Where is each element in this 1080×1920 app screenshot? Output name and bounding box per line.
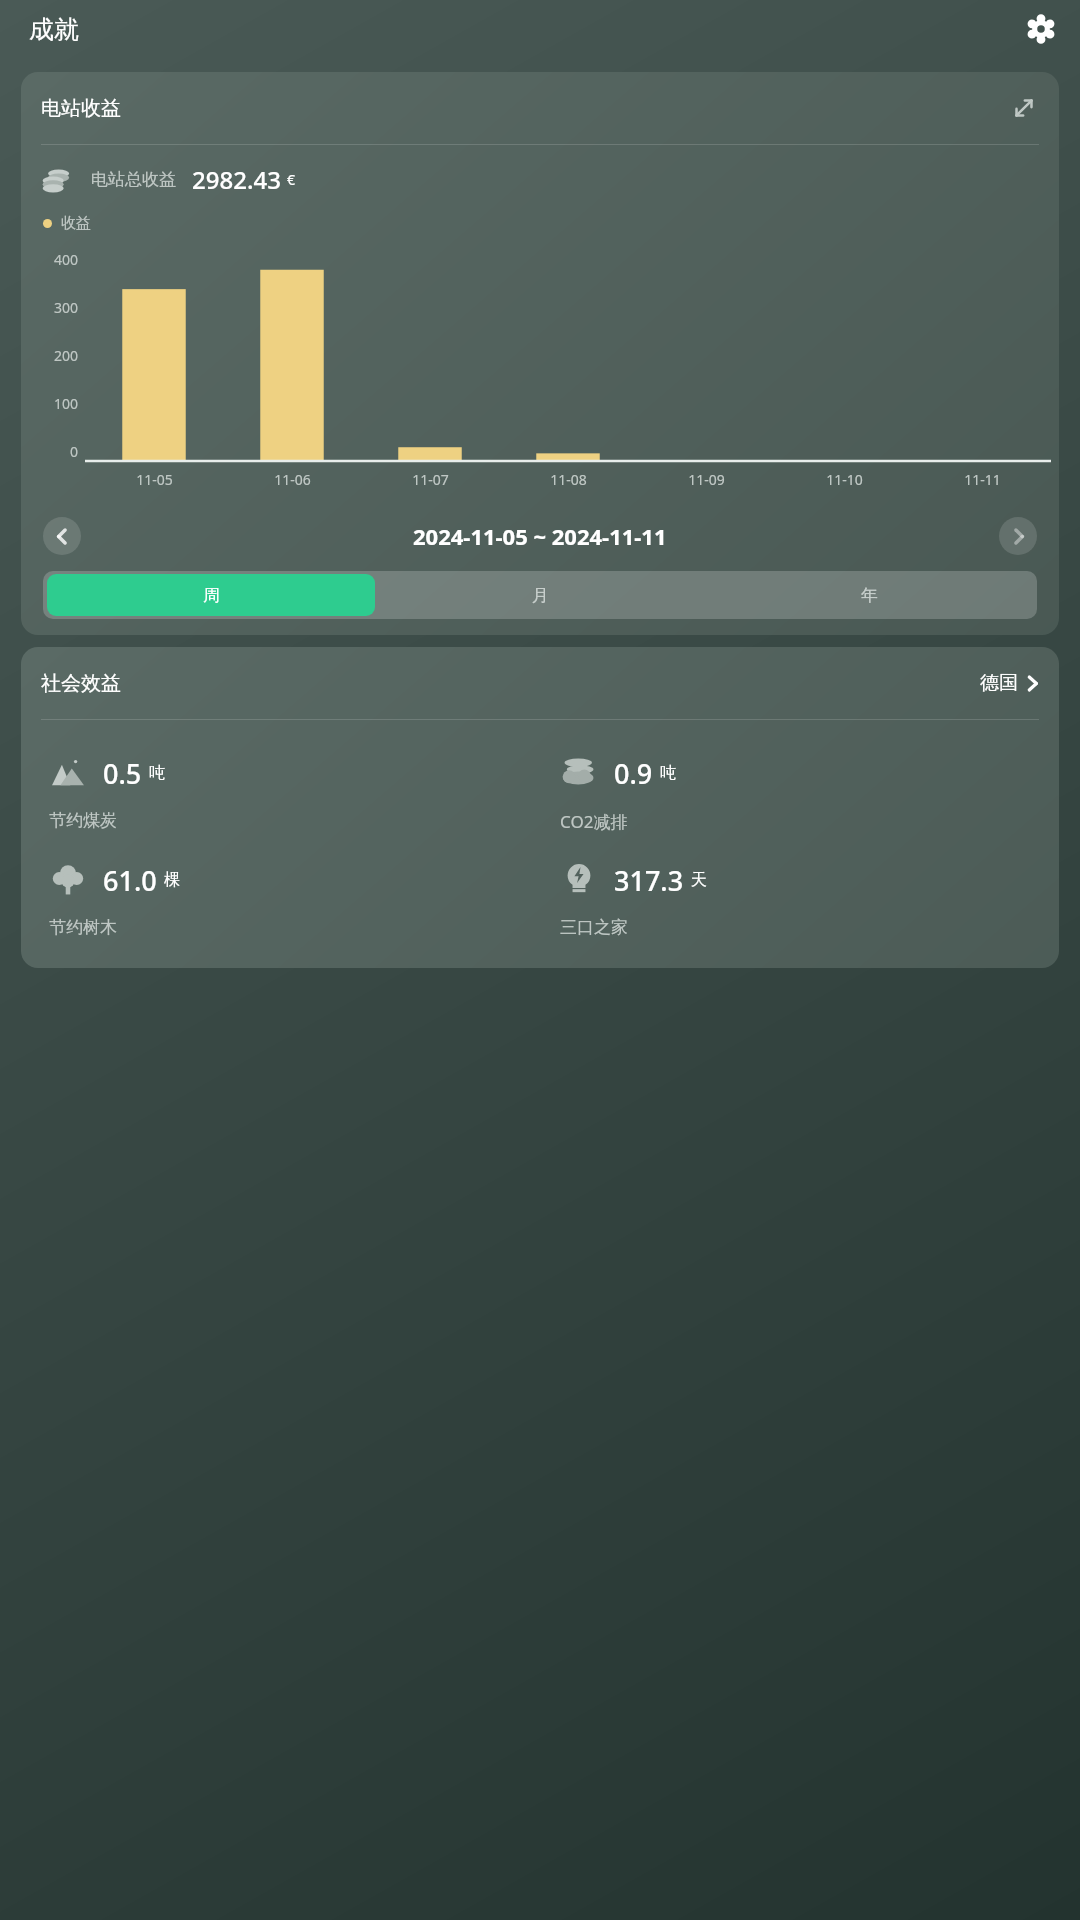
staticText: 11-09	[688, 470, 725, 489]
button[interactable]: Expand	[1009, 93, 1039, 123]
staticText: 0.5	[103, 755, 142, 792]
staticText: 电站总收益	[91, 169, 176, 190]
button[interactable]: 德国	[980, 671, 1039, 695]
staticText: 三口之家	[560, 917, 628, 938]
staticText: 0.9	[614, 755, 653, 792]
staticText: 年	[861, 585, 878, 606]
staticText: 收益	[61, 214, 91, 233]
staticText: 400	[54, 250, 79, 269]
staticText: 11-05	[136, 470, 173, 489]
staticText: 100	[54, 394, 79, 413]
staticText: 月	[532, 585, 549, 606]
staticText: 300	[54, 298, 79, 317]
staticText: 节约树木	[49, 917, 117, 938]
staticText: 棵	[164, 870, 180, 890]
staticText: 317.3	[614, 862, 684, 899]
staticText: 天	[691, 870, 707, 890]
staticText: 周	[203, 585, 220, 606]
staticText: 0	[70, 442, 79, 461]
staticText: 节约煤炭	[49, 810, 117, 831]
staticText: 吨	[149, 763, 165, 783]
staticText: 德国	[980, 671, 1018, 695]
button[interactable]: Next	[999, 517, 1037, 555]
button[interactable]: Settings	[1024, 12, 1058, 46]
staticText: 11-08	[550, 470, 587, 489]
button[interactable]: Previous	[43, 517, 81, 555]
staticText: 11-10	[826, 470, 863, 489]
button[interactable]: 周	[47, 574, 375, 616]
staticText: 社会效益	[41, 671, 121, 696]
staticText: 电站收益	[41, 96, 121, 121]
staticText: 11-06	[274, 470, 311, 489]
staticText: 成就	[29, 14, 79, 45]
staticText: 61.0	[103, 862, 157, 899]
staticText: 11-07	[412, 470, 449, 489]
staticText: 2024-11-05 ~ 2024-11-11	[413, 521, 667, 551]
staticText: 吨	[660, 763, 676, 783]
staticText: 11-11	[964, 470, 1001, 489]
staticText: 2982.43	[192, 163, 281, 196]
button[interactable]: 年	[706, 574, 1033, 616]
staticText: 200	[54, 346, 79, 365]
staticText: €	[287, 170, 296, 189]
staticText: CO2减排	[560, 810, 628, 833]
button[interactable]: 月	[377, 574, 704, 616]
